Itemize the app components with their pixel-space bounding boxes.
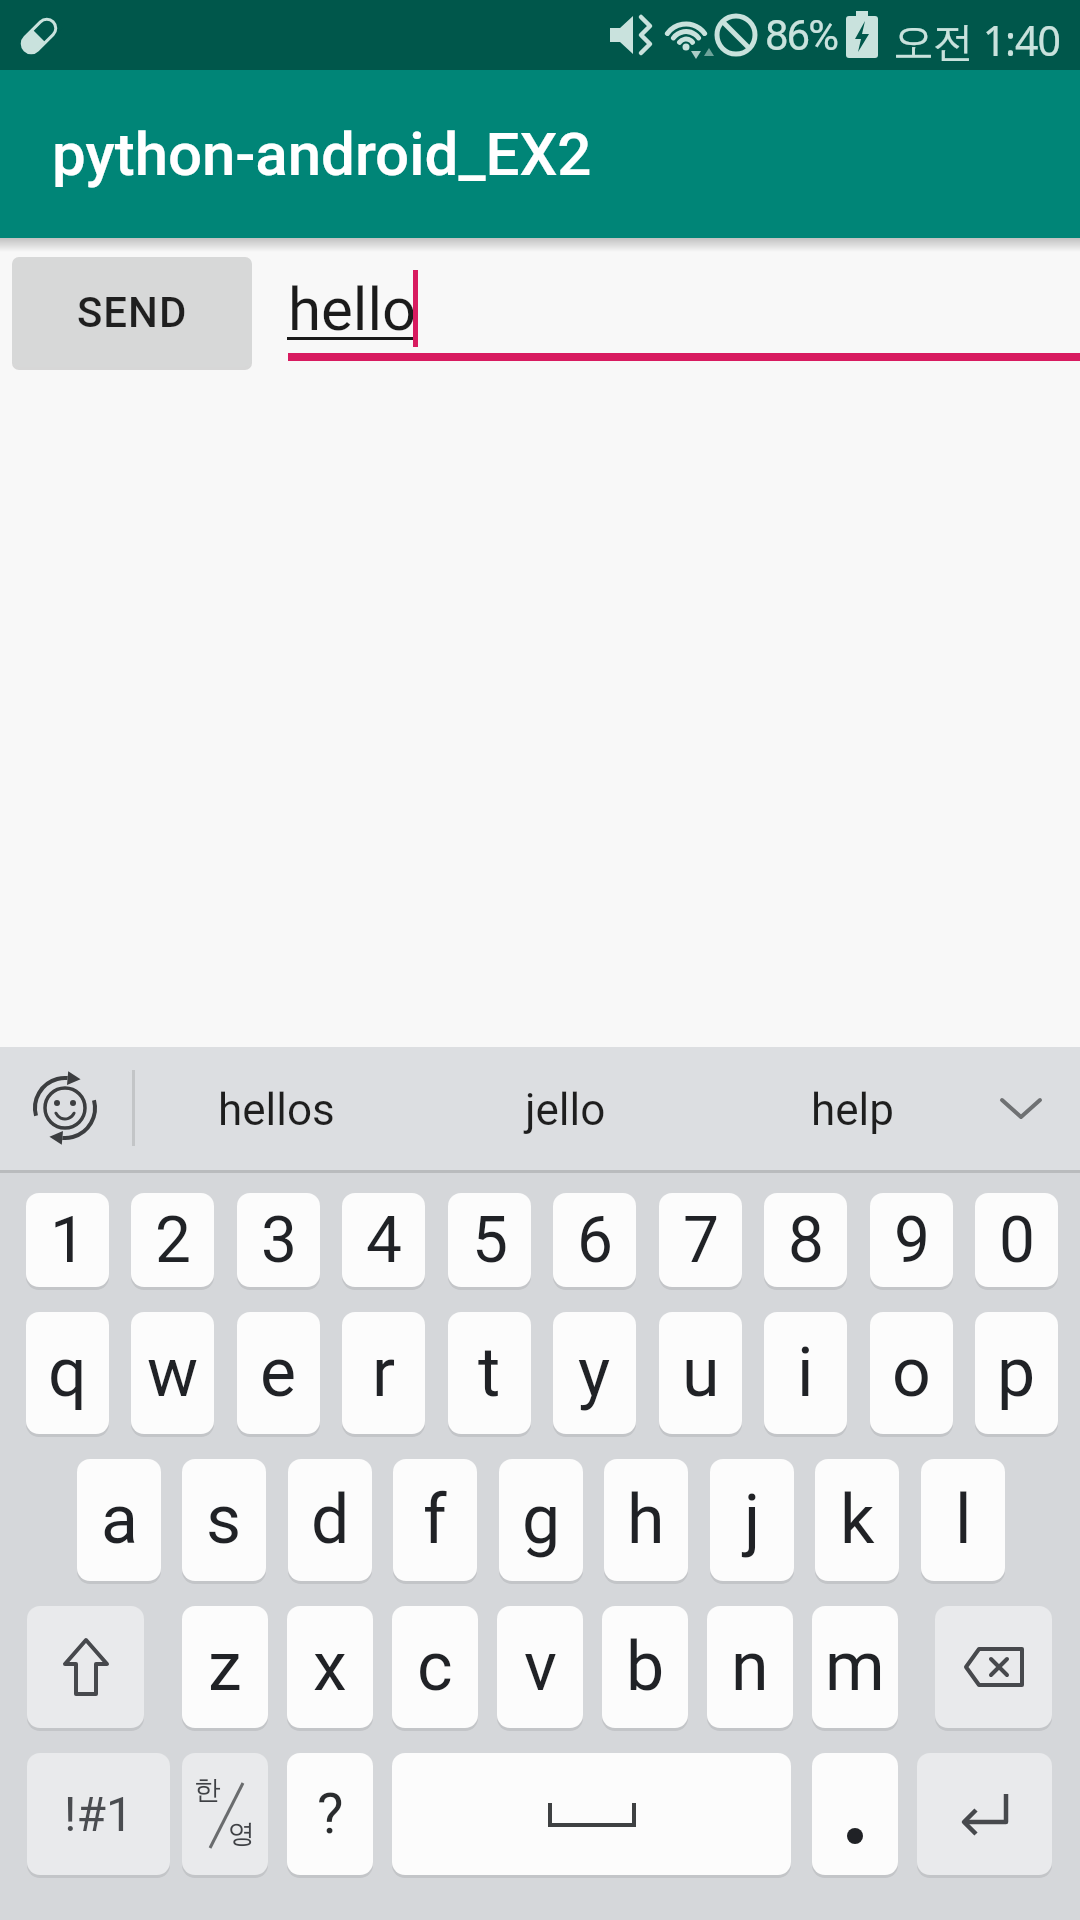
button[interactable]: l: [921, 1459, 1005, 1581]
staticText: e: [260, 1333, 297, 1413]
button[interactable]: [917, 1753, 1052, 1875]
staticText: j: [744, 1480, 761, 1560]
button[interactable]: m: [812, 1606, 898, 1728]
staticText: k: [840, 1480, 875, 1560]
button[interactable]: hellos: [133, 1047, 420, 1173]
staticText: 5: [472, 1203, 508, 1278]
staticText: hello: [288, 274, 417, 344]
staticText: o: [892, 1333, 931, 1413]
staticText: v: [524, 1627, 557, 1707]
button[interactable]: 6: [553, 1193, 636, 1287]
staticText: p: [997, 1333, 1036, 1413]
button[interactable]: 5: [448, 1193, 531, 1287]
staticText: help: [811, 1084, 894, 1136]
staticText: !#1: [64, 1786, 133, 1842]
staticText: SEND: [77, 288, 188, 337]
button[interactable]: jello: [420, 1047, 710, 1173]
button[interactable]: q: [26, 1312, 109, 1434]
button[interactable]: 한: [182, 1753, 268, 1875]
staticText: r: [372, 1333, 396, 1413]
staticText: 한: [194, 1773, 221, 1807]
button[interactable]: y: [553, 1312, 636, 1434]
staticText: l: [955, 1480, 972, 1560]
staticText: g: [522, 1480, 561, 1560]
button[interactable]: k: [815, 1459, 899, 1581]
button[interactable]: [27, 1606, 144, 1728]
button[interactable]: 7: [659, 1193, 742, 1287]
button[interactable]: !#1: [27, 1753, 170, 1875]
button[interactable]: ?: [287, 1753, 373, 1875]
staticText: python-android_EX2: [52, 119, 592, 189]
button[interactable]: n: [707, 1606, 793, 1728]
button[interactable]: d: [288, 1459, 372, 1581]
button[interactable]: e: [237, 1312, 320, 1434]
staticText: 0: [999, 1203, 1035, 1278]
button[interactable]: 2: [131, 1193, 214, 1287]
button[interactable]: h: [604, 1459, 688, 1581]
button[interactable]: a: [77, 1459, 161, 1581]
staticText: x: [313, 1627, 347, 1707]
button[interactable]: p: [975, 1312, 1058, 1434]
staticText: hellos: [218, 1084, 335, 1136]
button[interactable]: 4: [342, 1193, 425, 1287]
button[interactable]: u: [659, 1312, 742, 1434]
staticText: 6: [577, 1203, 613, 1278]
button[interactable]: j: [710, 1459, 794, 1581]
button[interactable]: [270, 250, 1080, 362]
staticText: w: [147, 1333, 199, 1413]
button[interactable]: x: [287, 1606, 373, 1728]
staticText: ?: [317, 1781, 344, 1847]
button[interactable]: c: [392, 1606, 478, 1728]
button[interactable]: v: [497, 1606, 583, 1728]
button[interactable]: z: [182, 1606, 268, 1728]
staticText: h: [627, 1480, 665, 1560]
button[interactable]: t: [448, 1312, 531, 1434]
button[interactable]: i: [764, 1312, 847, 1434]
staticText: d: [311, 1480, 350, 1560]
staticText: z: [208, 1627, 242, 1707]
button[interactable]: o: [870, 1312, 953, 1434]
staticText: 영: [228, 1817, 255, 1851]
button[interactable]: help: [710, 1047, 995, 1173]
button[interactable]: [20, 1063, 110, 1153]
button[interactable]: 9: [870, 1193, 953, 1287]
staticText: 3: [261, 1203, 297, 1278]
staticText: 7: [683, 1203, 719, 1278]
button[interactable]: 3: [237, 1193, 320, 1287]
button[interactable]: s: [182, 1459, 266, 1581]
staticText: n: [731, 1627, 769, 1707]
button[interactable]: 8: [764, 1193, 847, 1287]
button[interactable]: [812, 1753, 898, 1875]
button[interactable]: b: [602, 1606, 688, 1728]
button[interactable]: [985, 1073, 1057, 1145]
staticText: m: [825, 1627, 885, 1707]
staticText: t: [478, 1333, 501, 1413]
button[interactable]: f: [393, 1459, 477, 1581]
staticText: b: [626, 1627, 665, 1707]
staticText: 1: [50, 1203, 86, 1278]
button[interactable]: SEND: [12, 257, 252, 367]
staticText: u: [682, 1333, 720, 1413]
button[interactable]: 0: [975, 1193, 1058, 1287]
staticText: jello: [525, 1084, 606, 1136]
staticText: 4: [366, 1203, 402, 1278]
staticText: a: [101, 1480, 138, 1560]
button[interactable]: [935, 1606, 1052, 1728]
button[interactable]: [392, 1753, 791, 1875]
staticText: 오전 1:40: [893, 12, 1061, 68]
staticText: q: [48, 1333, 87, 1413]
staticText: f: [423, 1480, 447, 1560]
staticText: 86%: [765, 11, 837, 60]
staticText: 9: [894, 1203, 930, 1278]
button[interactable]: 1: [26, 1193, 109, 1287]
staticText: y: [578, 1333, 611, 1413]
button[interactable]: g: [499, 1459, 583, 1581]
staticText: 8: [788, 1203, 824, 1278]
staticText: 2: [155, 1203, 191, 1278]
button[interactable]: w: [131, 1312, 214, 1434]
staticText: c: [417, 1627, 453, 1707]
staticText: s: [206, 1480, 242, 1560]
button[interactable]: r: [342, 1312, 425, 1434]
staticText: i: [797, 1333, 814, 1413]
